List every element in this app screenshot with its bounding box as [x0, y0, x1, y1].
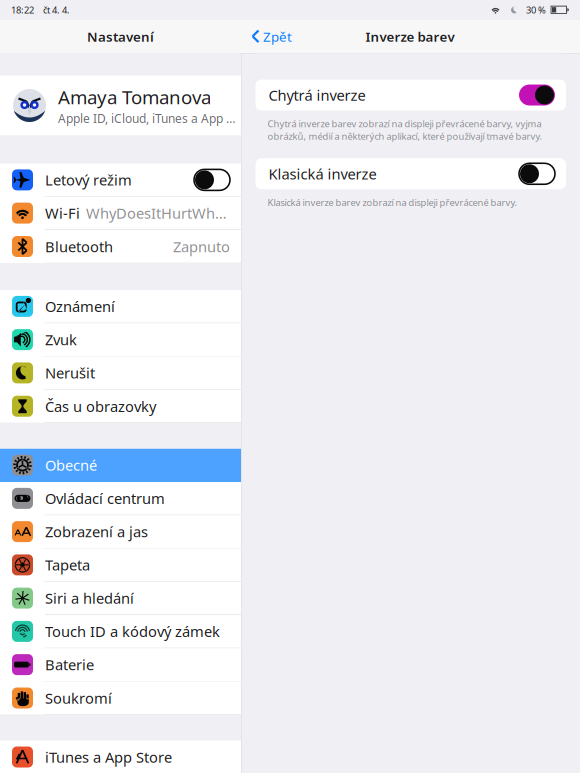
staticText: Letový režim	[45, 170, 132, 190]
button[interactable]: Obecné	[0, 449, 241, 482]
staticText: Wi-Fi	[45, 203, 80, 223]
staticText: Čas u obrazovky	[45, 396, 156, 416]
staticText: Tapeta	[45, 555, 90, 575]
staticText: Baterie	[45, 655, 94, 674]
staticText: Oznámení	[45, 297, 115, 316]
staticText: Zpět	[263, 28, 292, 45]
staticText: Klasická inverze	[268, 164, 376, 183]
button[interactable]: Zvuk	[0, 323, 241, 356]
staticText: Nerušit	[45, 363, 95, 383]
button[interactable]: Siri a hledání	[0, 582, 241, 615]
button[interactable]: Zobrazení a jas	[0, 515, 241, 548]
button[interactable]: Soukromí	[0, 681, 241, 714]
button[interactable]: Ovládací centrum	[0, 482, 241, 515]
button[interactable]: Touch ID a kódový zámek	[0, 615, 241, 648]
staticText: 30 %	[526, 4, 546, 16]
staticText: Zobrazení a jas	[45, 522, 148, 541]
button[interactable]: Klasická inverze	[255, 158, 566, 189]
button[interactable]: Letový režim	[0, 163, 241, 197]
staticText: čt 4. 4.	[43, 4, 70, 16]
staticText: iTunes a App Store	[45, 747, 172, 767]
staticText: Bluetooth	[45, 237, 113, 256]
button[interactable]: Zpět	[241, 20, 292, 53]
button[interactable]: Bluetooth	[0, 230, 241, 263]
staticText: 18:22	[11, 4, 34, 16]
staticText: Klasická inverze barev zobrazí na disple…	[267, 196, 517, 209]
button[interactable]: Čas u obrazovky	[0, 390, 241, 423]
staticText: Apple ID, iCloud, iTunes a App St…	[58, 110, 241, 126]
button[interactable]: Tapeta	[0, 548, 241, 582]
button[interactable]: Nastavení	[0, 20, 241, 53]
button[interactable]: Amaya Tomanova	[0, 75, 241, 135]
staticText: Ovládací centrum	[45, 489, 165, 508]
staticText: Soukromí	[45, 688, 112, 708]
staticText: Inverze barev	[365, 28, 454, 45]
staticText: Zapnuto	[173, 237, 230, 256]
staticText: Siri a hledání	[45, 588, 134, 608]
staticText: Obecné	[45, 455, 97, 475]
button[interactable]: Baterie	[0, 648, 241, 681]
staticText: Chytrá inverze	[268, 85, 365, 105]
staticText: WhyDoesItHurtWhenIP_…	[86, 203, 230, 223]
staticText: Amaya Tomanova	[58, 85, 211, 109]
staticText: Zvuk	[45, 330, 77, 349]
button[interactable]: Nerušit	[0, 356, 241, 390]
button[interactable]: Chytrá inverze	[255, 79, 566, 110]
staticText: Nastavení	[87, 28, 154, 45]
button[interactable]: iTunes a App Store	[0, 740, 241, 773]
button[interactable]: Wi-Fi	[0, 197, 241, 230]
staticText: Touch ID a kódový zámek	[45, 622, 220, 641]
button[interactable]: Oznámení	[0, 290, 241, 323]
staticText: Chytrá inverze barev zobrazí na displeji…	[267, 117, 542, 142]
